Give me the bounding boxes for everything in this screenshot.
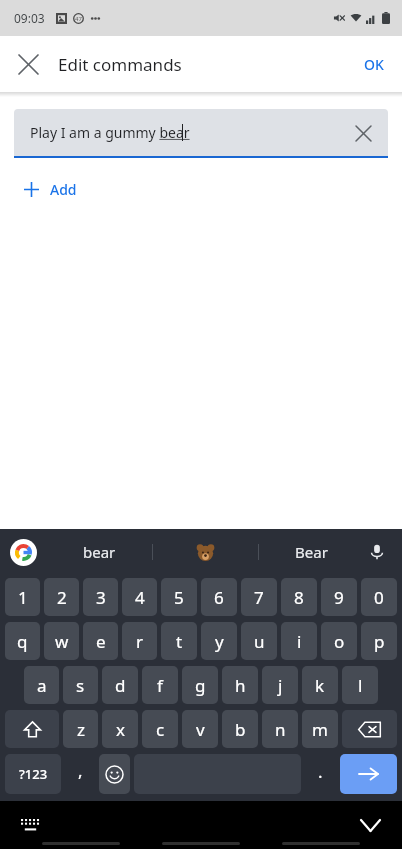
staticText: p [374, 630, 385, 653]
staticText: 2 [57, 586, 67, 609]
button[interactable]: 1 [5, 578, 40, 616]
staticText: bear [83, 542, 116, 562]
staticText: . [318, 760, 323, 783]
staticText: u [254, 630, 265, 653]
button[interactable]: 0 [361, 578, 397, 616]
button[interactable]: r [122, 622, 157, 660]
button[interactable]: u [241, 622, 277, 660]
staticText: o [334, 630, 345, 653]
staticText: Bear [295, 542, 328, 562]
button[interactable]: bear [46, 529, 152, 575]
staticText: 3 [96, 586, 106, 609]
button[interactable]: 7 [241, 578, 277, 616]
button[interactable]: ?123 [5, 754, 61, 794]
staticText: OK [364, 55, 384, 74]
button[interactable]: q [5, 622, 40, 660]
button[interactable]: t [161, 622, 197, 660]
staticText: Edit commands [58, 53, 182, 76]
button[interactable]: n [262, 710, 298, 748]
staticText: 0 [374, 586, 384, 609]
button[interactable]: 5 [161, 578, 197, 616]
button[interactable]: Voice input [362, 537, 392, 567]
staticText: z [77, 718, 85, 741]
button[interactable]: 2 [44, 578, 79, 616]
button[interactable]: Add [14, 172, 87, 207]
button[interactable]: Close [8, 44, 48, 84]
staticText: 4 [135, 586, 145, 609]
button[interactable]: Backspace [342, 710, 397, 748]
button[interactable]: h [222, 666, 258, 704]
staticText: , [78, 759, 83, 782]
staticText: w [55, 630, 69, 653]
staticText: c [156, 718, 165, 741]
button[interactable]: y [201, 622, 237, 660]
staticText: 8 [294, 586, 304, 609]
button[interactable]: Play I am a gummy bear [14, 109, 388, 156]
button[interactable]: g [182, 666, 218, 704]
button[interactable]: 6 [201, 578, 237, 616]
staticText: q [17, 630, 28, 653]
staticText: ?123 [19, 765, 48, 783]
staticText: b [235, 718, 246, 741]
button[interactable]: s [63, 666, 98, 704]
button[interactable]: Switch keyboard [14, 809, 46, 841]
button[interactable]: b [222, 710, 258, 748]
staticText: x [116, 718, 125, 741]
button[interactable]: 8 [281, 578, 317, 616]
button[interactable]: m [302, 710, 338, 748]
button[interactable]: Hide keyboard [352, 807, 388, 843]
staticText: 09:03 [14, 10, 45, 26]
staticText: t [176, 630, 183, 653]
staticText: e [96, 630, 106, 653]
button[interactable]: OK [352, 47, 396, 82]
button[interactable]: Clear text [346, 116, 380, 150]
button[interactable]: Emoji [99, 754, 130, 794]
staticText: a [37, 674, 47, 697]
button[interactable] [153, 529, 258, 575]
staticText: y [215, 630, 224, 653]
button[interactable]: l [342, 666, 378, 704]
button[interactable]: Enter [340, 754, 397, 794]
staticText: 1 [18, 586, 28, 609]
button[interactable]: w [44, 622, 79, 660]
button[interactable]: v [182, 710, 218, 748]
staticText: f [157, 674, 163, 697]
button[interactable]: d [102, 666, 138, 704]
staticText: 7 [254, 586, 264, 609]
staticText: m [312, 718, 328, 741]
button[interactable]: a [24, 666, 59, 704]
staticText: d [115, 674, 126, 697]
staticText: 5 [174, 586, 184, 609]
staticText: g [195, 674, 206, 697]
button[interactable]: x [102, 710, 138, 748]
staticText: Add [50, 180, 77, 199]
button[interactable]: o [321, 622, 357, 660]
staticText: v [196, 718, 205, 741]
button[interactable]: 4 [122, 578, 157, 616]
button[interactable]: z [63, 710, 98, 748]
button[interactable]: j [262, 666, 298, 704]
staticText: i [297, 630, 302, 653]
button[interactable]: Bear [259, 529, 364, 575]
button[interactable]: Google [10, 539, 37, 566]
button[interactable]: k [302, 666, 338, 704]
staticText: r [136, 630, 144, 653]
button[interactable]: , [63, 754, 97, 794]
button[interactable]: e [83, 622, 118, 660]
button[interactable]: 9 [321, 578, 357, 616]
staticText: k [315, 674, 325, 697]
staticText: l [358, 674, 363, 697]
button[interactable]: p [361, 622, 397, 660]
button[interactable]: . [303, 754, 338, 794]
staticText: s [76, 674, 85, 697]
staticText: n [275, 718, 286, 741]
staticText: Play I am a gummy bear [30, 123, 190, 142]
button[interactable]: Shift [5, 710, 59, 748]
staticText: j [278, 674, 283, 697]
button[interactable]: 3 [83, 578, 118, 616]
button[interactable]: i [281, 622, 317, 660]
button[interactable]: c [142, 710, 178, 748]
button[interactable]: f [142, 666, 178, 704]
staticText: 47 [75, 15, 82, 23]
